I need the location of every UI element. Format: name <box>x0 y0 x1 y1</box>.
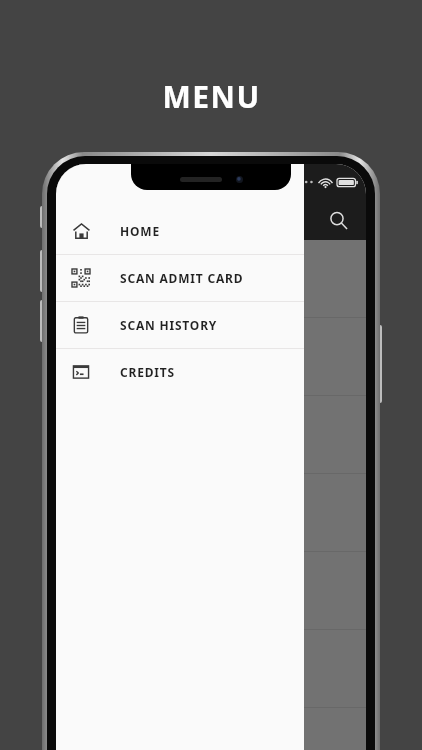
button[interactable]: Session at 5:30 PM <box>56 474 366 552</box>
staticText: HOME <box>120 223 160 239</box>
button[interactable]: SCAN ADMIT CARD <box>56 255 304 301</box>
staticText: SCAN HISTORY <box>120 317 218 333</box>
button[interactable]: HOME <box>56 208 304 254</box>
button[interactable]: Schedule Dec 2021 <box>56 552 366 630</box>
button[interactable]: More updates <box>56 630 366 708</box>
button[interactable]: Search <box>318 200 358 240</box>
button[interactable]: Latest news & posts <box>56 396 366 474</box>
button[interactable]: Important reminder <box>56 318 366 396</box>
button[interactable]: CREDITS <box>56 349 304 395</box>
button[interactable]: SCAN HISTORY <box>56 302 304 348</box>
button[interactable]: Archive <box>56 708 366 750</box>
staticText: COVID VACCINE UPDATE as on <box>72 258 290 278</box>
staticText: MENU <box>162 76 261 117</box>
staticText: SCAN ADMIT CARD <box>120 270 244 286</box>
staticText: Important reminder <box>72 336 220 356</box>
button[interactable]: COVID VACCINE UPDATE as on <box>56 240 366 318</box>
staticText: CREDITS <box>120 364 175 380</box>
staticText: yesterday <box>72 366 127 382</box>
